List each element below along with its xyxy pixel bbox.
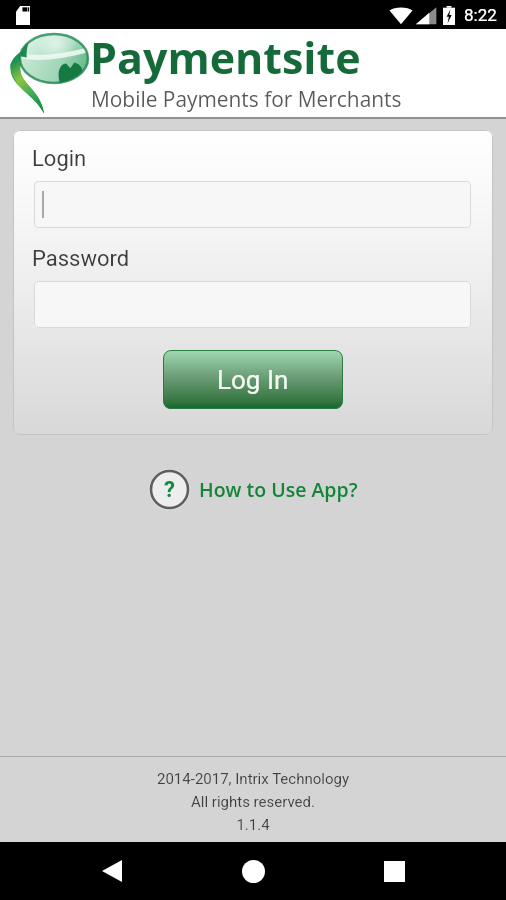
button[interactable]: Login field (34, 181, 471, 228)
button[interactable]: Password field (34, 281, 471, 328)
button[interactable]: ? (148, 468, 358, 511)
staticText: How to Use App? (199, 476, 358, 503)
staticText: 8:22 (464, 5, 497, 25)
button[interactable]: Log In (163, 350, 343, 409)
button[interactable]: Home (224, 842, 282, 900)
staticText: 2014-2017, Intrix Technology (0, 770, 506, 788)
staticText: 1.1.4 (0, 816, 506, 834)
button[interactable]: Back (83, 842, 141, 900)
staticText: Log In (217, 365, 289, 395)
staticText: Paymentsite (90, 28, 361, 87)
staticText: Mobile Payments for Merchants (91, 85, 402, 113)
staticText: All rights reserved. (0, 793, 506, 811)
staticText: Password (32, 246, 130, 272)
button[interactable]: Recent apps (365, 842, 423, 900)
staticText: Login (32, 146, 87, 172)
staticText: ? (164, 477, 175, 503)
